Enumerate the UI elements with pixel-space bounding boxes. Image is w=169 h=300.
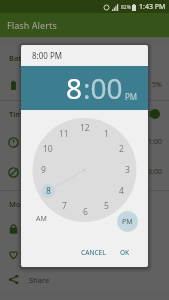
button[interactable]: 8 <box>39 182 57 200</box>
staticText: Flash duration <box>29 137 80 147</box>
staticText: 3 <box>125 164 130 176</box>
button[interactable]: AM <box>30 208 52 230</box>
button[interactable]: Timeout <box>0 101 169 127</box>
staticText: PM <box>122 217 133 227</box>
staticText: 5% <box>152 80 162 90</box>
button[interactable]: Favourites <box>0 242 169 267</box>
staticText: 1:43 PM <box>139 2 166 12</box>
staticText: 10 <box>43 143 53 155</box>
staticText: Battery saver <box>9 53 57 63</box>
staticText: CANCEL <box>81 248 106 257</box>
staticText: 82% <box>121 4 131 11</box>
staticText: 7 <box>62 200 67 212</box>
staticText: 1 <box>104 128 109 140</box>
button[interactable]: 9 <box>34 161 52 179</box>
button[interactable]: Flash duration <box>0 127 169 157</box>
button[interactable]: 6 <box>76 203 94 221</box>
button[interactable]: 4 <box>112 182 130 200</box>
staticText: :00 <box>83 69 123 107</box>
button[interactable]: CANCEL <box>76 244 111 261</box>
staticText: 12 <box>80 122 90 134</box>
staticText: 11 <box>59 128 69 140</box>
staticText: 9 <box>41 164 46 176</box>
staticText: OK <box>120 248 130 257</box>
button[interactable]: 11 <box>55 125 73 143</box>
staticText: Share <box>29 275 50 285</box>
button[interactable]: Repeat delay <box>0 157 169 187</box>
button[interactable]: 1 <box>97 125 115 143</box>
button[interactable]: 5 <box>97 197 115 215</box>
staticText: 8:00 PM <box>32 50 63 61</box>
staticText: 8 <box>66 69 83 107</box>
staticText: Timeout <box>9 109 39 119</box>
button[interactable]: 12 <box>76 119 94 137</box>
staticText: Flash Alerts <box>7 19 57 31</box>
staticText: 2 <box>119 143 124 155</box>
staticText: 5 <box>104 200 109 212</box>
button[interactable]: 7 <box>55 197 73 215</box>
button[interactable]: 2 <box>112 140 130 158</box>
staticText: PM <box>125 91 138 102</box>
staticText: More <box>9 199 28 209</box>
staticText: 4 <box>119 185 124 197</box>
button[interactable]: 10 <box>39 140 57 158</box>
button[interactable]: Share <box>0 267 169 292</box>
button[interactable]: OK <box>115 244 135 261</box>
staticText: 8 <box>46 185 51 197</box>
staticText: Repeat delay <box>29 167 75 177</box>
staticText: 1:00 <box>148 137 162 147</box>
staticText: 3:00 <box>148 167 162 177</box>
button[interactable]: 3 <box>118 161 136 179</box>
staticText: AM <box>36 214 47 224</box>
button[interactable]: PM <box>117 211 138 232</box>
staticText: 6 <box>83 206 88 218</box>
button[interactable]: Rate this app <box>0 217 169 242</box>
button[interactable]: Turn on at <box>0 70 169 100</box>
